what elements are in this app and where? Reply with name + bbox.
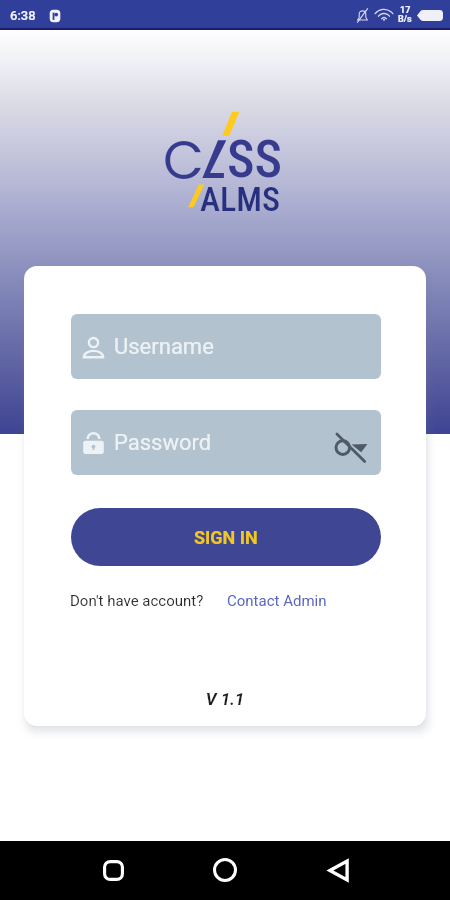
button[interactable]: Username [71,314,381,379]
staticText: Username [114,334,214,360]
staticText: Contact Admin [227,592,327,610]
button[interactable]: Password [71,410,381,475]
button[interactable]: Show password [330,431,374,467]
staticText: Password [114,430,212,456]
staticText: B/s [398,14,412,25]
staticText: 17 [400,5,411,16]
staticText: 6:38 [10,8,36,23]
staticText: V 1.1 [24,689,426,709]
staticText: SIGN IN [194,527,258,548]
button[interactable]: Home [202,847,248,893]
button[interactable]: SIGN IN [71,508,381,566]
staticText: ALMS [200,179,280,219]
button[interactable]: Contact Admin [227,592,327,610]
button[interactable]: Recents [90,847,136,893]
staticText: C [163,123,204,197]
button[interactable]: Back [315,847,361,893]
staticText: SS [227,129,283,190]
staticText: Don't have account? [70,592,204,610]
